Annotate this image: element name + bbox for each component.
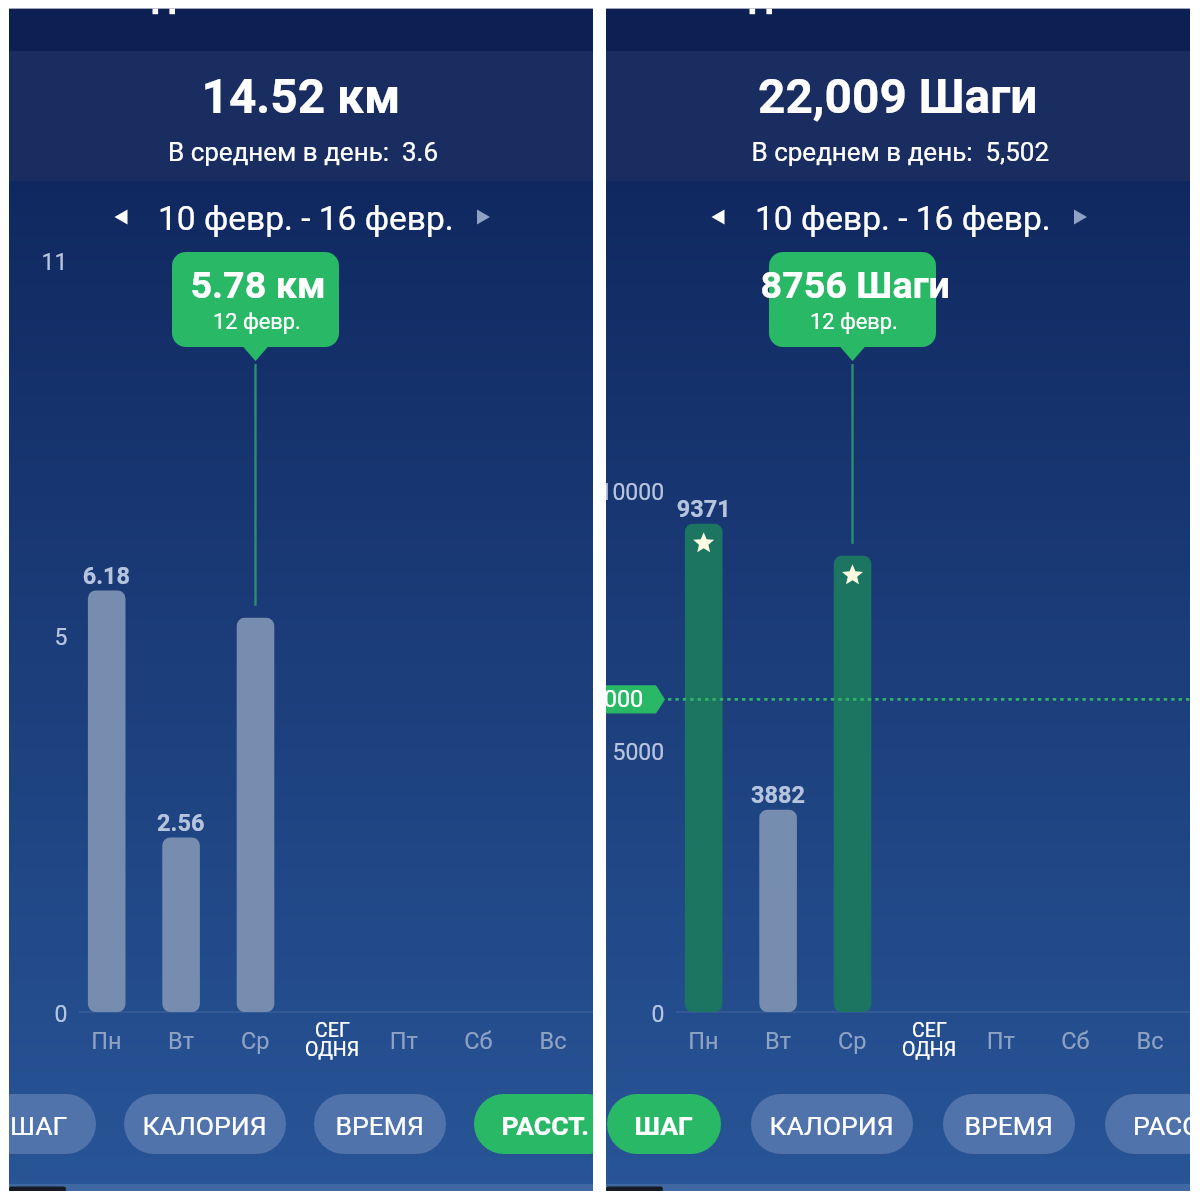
button[interactable]: Previous week [109,199,149,239]
button[interactable] [1105,1094,1190,1154]
button[interactable] [607,1094,721,1154]
button[interactable] [9,1094,96,1154]
button[interactable]: 5.78 км [172,252,339,347]
button[interactable] [943,1094,1075,1154]
button[interactable]: 8756 Шаги [769,252,936,347]
button[interactable] [751,1094,913,1154]
button[interactable] [314,1094,446,1154]
button[interactable] [474,1094,593,1154]
button[interactable]: Previous week [706,199,746,239]
button[interactable]: Next week [1069,199,1109,239]
button[interactable]: Next week [472,199,512,239]
button[interactable] [124,1094,286,1154]
